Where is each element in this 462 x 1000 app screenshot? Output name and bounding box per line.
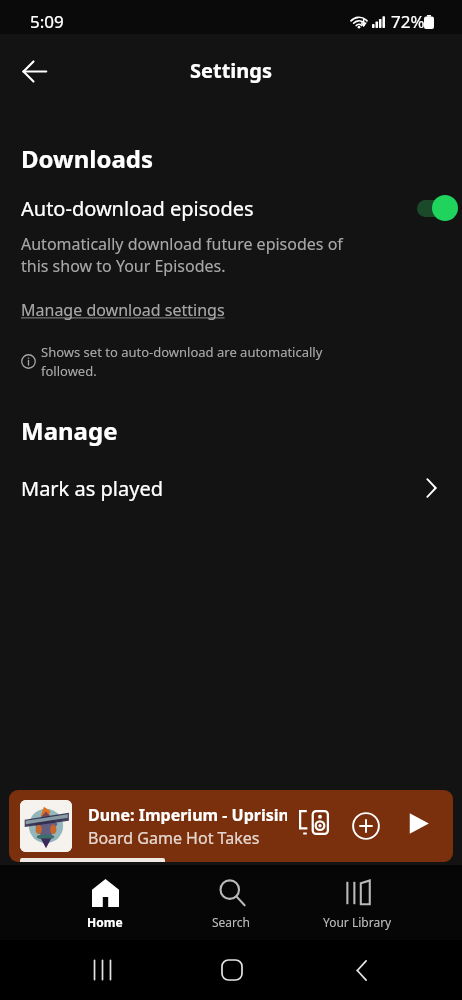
staticText: 72% — [391, 10, 425, 33]
button[interactable]: Back — [340, 949, 382, 991]
staticText: Dune: Imperium - Uprising — [88, 804, 287, 824]
staticText: Mark as played — [21, 475, 426, 502]
button[interactable]: Connect to a device — [294, 802, 334, 842]
staticText: Downloads — [21, 142, 153, 175]
button[interactable]: Dune: Imperium - Uprising — [9, 790, 453, 862]
staticText: Auto-download episodes — [21, 195, 416, 222]
staticText: Shows set to auto-download are automatic… — [41, 343, 323, 379]
staticText: Manage — [21, 414, 118, 447]
button[interactable]: Auto-download episodes toggle, on — [416, 194, 458, 222]
staticText: Board Game Hot Takes — [88, 827, 260, 847]
staticText: Settings — [190, 57, 272, 84]
button[interactable]: Manage download settings — [21, 299, 225, 321]
staticText: Your Library — [323, 914, 392, 930]
button[interactable]: Mark as played — [0, 468, 462, 508]
button[interactable]: Play — [401, 807, 436, 842]
button[interactable]: Auto-download episodes — [0, 188, 462, 228]
button[interactable]: Search — [168, 878, 294, 936]
button[interactable]: Your Library — [294, 878, 420, 936]
button[interactable]: Save to Your Episodes — [346, 806, 385, 845]
button[interactable]: Back — [10, 47, 58, 95]
button[interactable]: Recent apps — [81, 949, 123, 991]
staticText: Search — [212, 914, 250, 930]
staticText: 5:09 — [30, 10, 64, 33]
staticText: Automatically download future episodes o… — [21, 233, 343, 277]
staticText: Home — [87, 914, 123, 930]
button[interactable]: Home — [211, 949, 253, 991]
button[interactable]: Home — [42, 878, 168, 936]
